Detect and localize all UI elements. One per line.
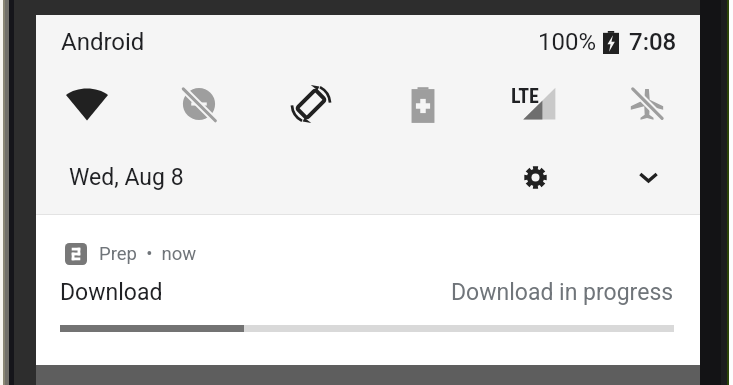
staticText: Android <box>61 28 145 56</box>
button[interactable]: Expand <box>626 155 670 199</box>
button[interactable]: Airplane mode <box>619 76 675 132</box>
staticText: LTE <box>511 84 539 107</box>
button[interactable]: Wi-Fi <box>59 76 115 132</box>
button[interactable]: Settings <box>513 155 557 199</box>
staticText: Download <box>60 279 163 306</box>
button[interactable]: Prep • now <box>36 215 700 332</box>
staticText: 100% <box>538 28 597 56</box>
staticText: Download in progress <box>451 279 674 306</box>
staticText: 7:08 <box>629 28 677 56</box>
button[interactable]: Battery saver <box>395 76 451 132</box>
button[interactable]: Do not disturb <box>171 76 227 132</box>
staticText: Prep • now <box>99 243 197 265</box>
staticText: Wed, Aug 8 <box>69 164 184 191</box>
button[interactable]: Auto rotate <box>283 76 339 132</box>
button[interactable]: Mobile data <box>507 76 563 132</box>
